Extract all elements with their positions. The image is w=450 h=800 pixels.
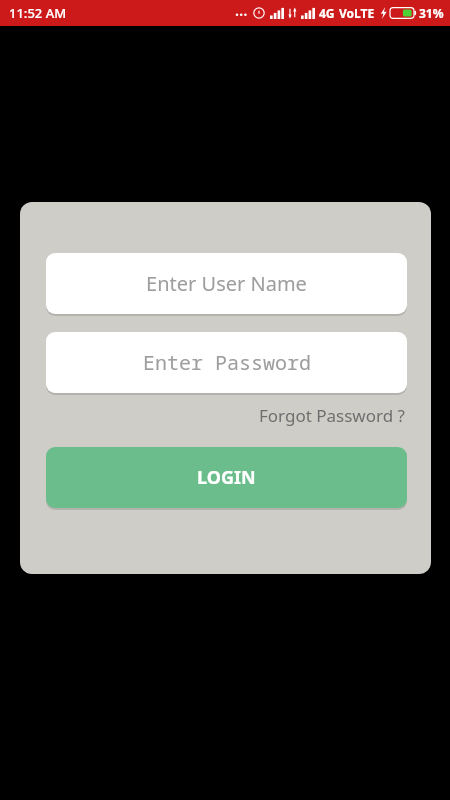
staticText: 4G xyxy=(319,5,335,21)
staticText: 11:52 AM xyxy=(9,4,67,22)
button[interactable]: Forgot Password ? xyxy=(257,402,407,429)
button[interactable]: Enter User Name xyxy=(46,253,407,314)
staticText: VoLTE xyxy=(339,5,375,21)
staticText: 31% xyxy=(419,5,444,21)
button[interactable]: Enter Password xyxy=(46,332,407,393)
staticText: LOGIN xyxy=(197,465,256,490)
staticText: Enter Password xyxy=(143,349,311,376)
staticText: Enter User Name xyxy=(146,270,307,297)
staticText: Forgot Password ? xyxy=(259,404,405,427)
button[interactable]: LOGIN xyxy=(46,447,407,508)
